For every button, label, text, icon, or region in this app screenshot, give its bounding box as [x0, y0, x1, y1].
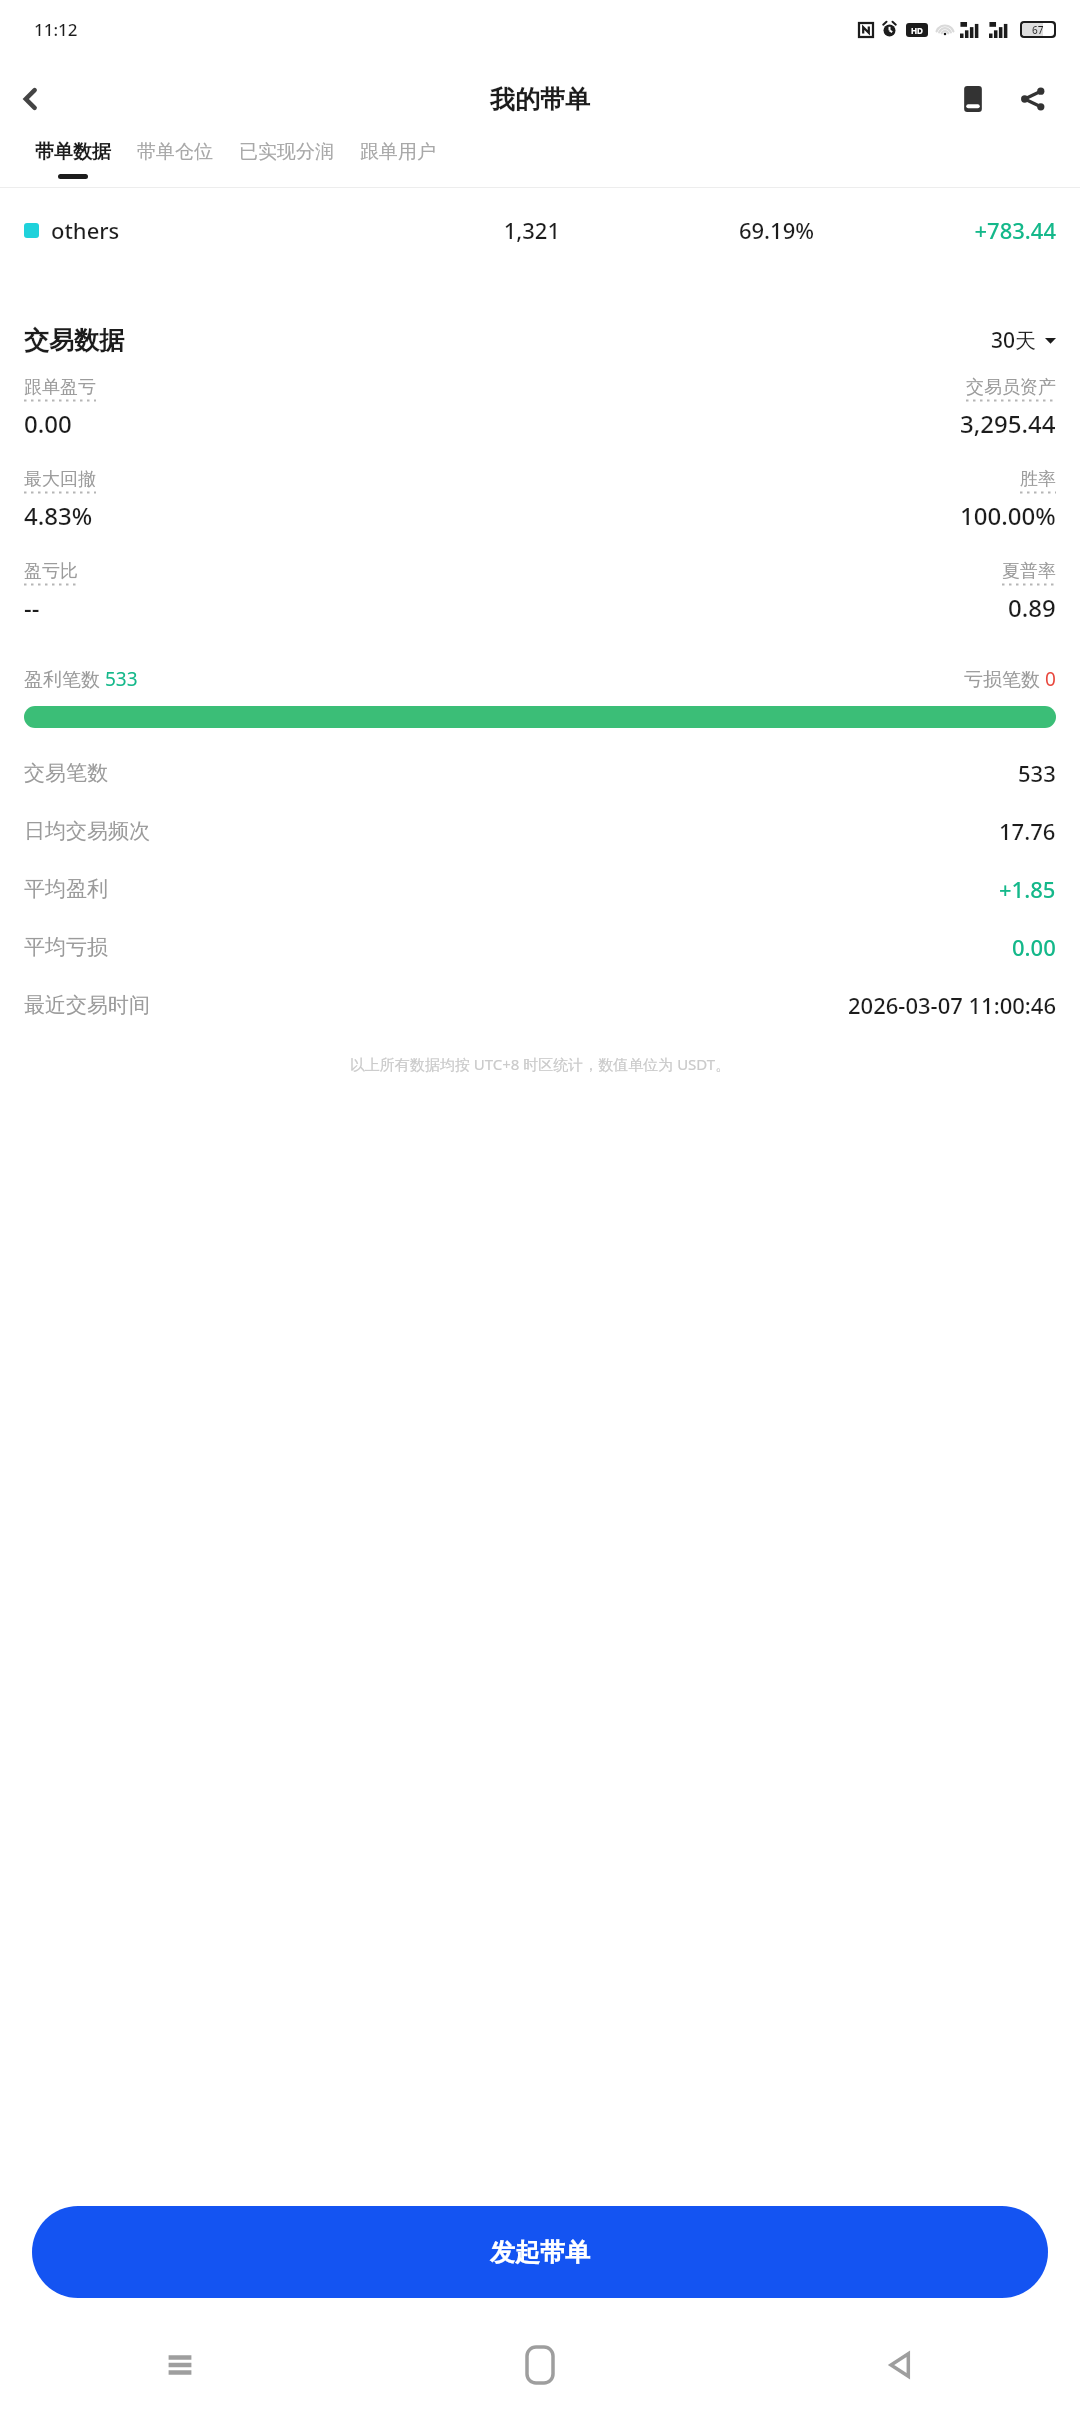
staticText: 带单数据 [35, 140, 111, 164]
staticText: 已实现分润 [239, 140, 334, 164]
staticText: HD [911, 25, 923, 36]
staticText: 日均交易频次 [24, 818, 150, 844]
staticText: +1.85 [999, 874, 1056, 904]
button[interactable]: Home [360, 2318, 720, 2412]
staticText: 最大回撤 [24, 468, 96, 491]
button[interactable]: 带单仓位 [124, 140, 226, 187]
button[interactable]: Guide [946, 72, 1000, 126]
staticText: 0.00 [1012, 932, 1056, 962]
button[interactable]: Back [0, 68, 62, 130]
staticText: 交易数据 [24, 325, 124, 356]
button[interactable]: 平均亏损 [24, 918, 1056, 976]
button[interactable]: 平均盈利 [24, 860, 1056, 918]
staticText: 0.00 [24, 407, 72, 440]
staticText: 跟单盈亏 [24, 376, 96, 399]
staticText: 3,295.44 [960, 407, 1056, 440]
staticText: 0 [1045, 666, 1056, 692]
staticText: 30天 [991, 326, 1037, 355]
staticText: 67 [1032, 23, 1044, 36]
staticText: 最近交易时间 [24, 992, 150, 1018]
staticText: 亏损笔数 [964, 666, 1045, 692]
button[interactable]: Share [1006, 72, 1060, 126]
staticText: 平均亏损 [24, 934, 108, 960]
staticText: 17.76 [999, 816, 1056, 846]
button[interactable]: Recents [0, 2318, 360, 2412]
staticText: 平均盈利 [24, 876, 108, 902]
button[interactable]: 交易笔数 [24, 744, 1056, 802]
button[interactable]: 日均交易频次 [24, 802, 1056, 860]
staticText: 100.00% [960, 499, 1056, 532]
button[interactable]: 最近交易时间 [24, 976, 1056, 1034]
staticText: 4.83% [24, 499, 93, 532]
staticText: 盈亏比 [24, 560, 78, 583]
button[interactable]: others [24, 215, 1056, 245]
button[interactable]: Back [720, 2318, 1080, 2412]
staticText: others [51, 215, 318, 245]
staticText: +783.44 [814, 215, 1056, 245]
button[interactable]: 带单数据 [22, 140, 124, 187]
button[interactable]: 30天 [991, 326, 1056, 355]
button[interactable]: 跟单用户 [347, 140, 449, 187]
staticText: 0.89 [1008, 591, 1056, 624]
staticText: 跟单用户 [360, 140, 436, 164]
staticText: 盈利笔数 [24, 666, 105, 692]
staticText: 夏普率 [1002, 560, 1056, 583]
staticText: 533 [105, 666, 138, 692]
staticText: 1,321 [318, 215, 560, 245]
staticText: 我的带单 [490, 84, 590, 115]
staticText: 11:12 [34, 18, 78, 41]
staticText: 交易笔数 [24, 760, 108, 786]
button[interactable]: 已实现分润 [226, 140, 347, 187]
button[interactable]: 发起带单 [32, 2206, 1048, 2298]
staticText: 交易员资产 [966, 376, 1056, 399]
staticText: 69.19% [560, 215, 814, 245]
staticText: 带单仓位 [137, 140, 213, 164]
staticText: -- [24, 591, 40, 624]
staticText: 发起带单 [490, 2237, 590, 2268]
staticText: 胜率 [1020, 468, 1056, 491]
staticText: 2026-03-07 11:00:46 [848, 990, 1056, 1020]
staticText: 以上所有数据均按 UTC+8 时区统计，数值单位为 USDT。 [0, 1054, 1080, 1074]
staticText: 533 [1018, 758, 1056, 788]
